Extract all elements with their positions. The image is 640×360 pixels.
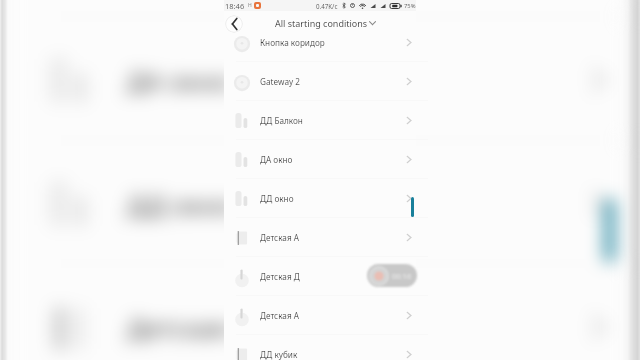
staticText: Кнопка коридор [260,37,325,48]
staticText: Gateway 2 [260,76,300,87]
button[interactable]: ДД окно [13,142,621,265]
staticText: ДД окно [127,186,234,221]
staticText: ДА окно [260,154,293,165]
button[interactable]: ДД окно [224,179,416,218]
staticText: Детская А [260,310,299,321]
staticText: ДД кубик [260,349,298,360]
button[interactable]: ДА окно [13,18,621,142]
staticText: ДД окно [260,193,294,204]
staticText: 0.47K/c [316,2,338,10]
button[interactable]: Gateway 2 [224,62,416,101]
button[interactable]: Детская Д [224,257,416,296]
button[interactable]: Кнопка коридор [224,23,416,62]
button[interactable]: Back [225,15,243,33]
staticText: 75% [404,2,416,10]
button[interactable]: Stop recording [367,264,417,287]
staticText: Детская А [127,309,250,344]
button[interactable]: ДА окно [224,140,416,179]
button[interactable]: Детская А [224,218,416,257]
staticText: ДД Балкон [260,115,303,126]
staticText: H [248,2,252,9]
button[interactable]: Детская А [224,296,416,335]
button[interactable]: Детская А [13,265,621,360]
staticText: 00:16 [392,271,412,281]
button[interactable]: ДД Балкон [224,101,416,140]
staticText: 18:46 [225,1,245,11]
staticText: Детская Д [260,271,300,282]
staticText: All starting conditions [275,17,368,29]
staticText: ДА окно [127,63,231,97]
button[interactable]: ДД Балкон [13,0,621,18]
button[interactable]: ДД кубик [224,335,416,360]
staticText: Детская А [260,232,299,243]
